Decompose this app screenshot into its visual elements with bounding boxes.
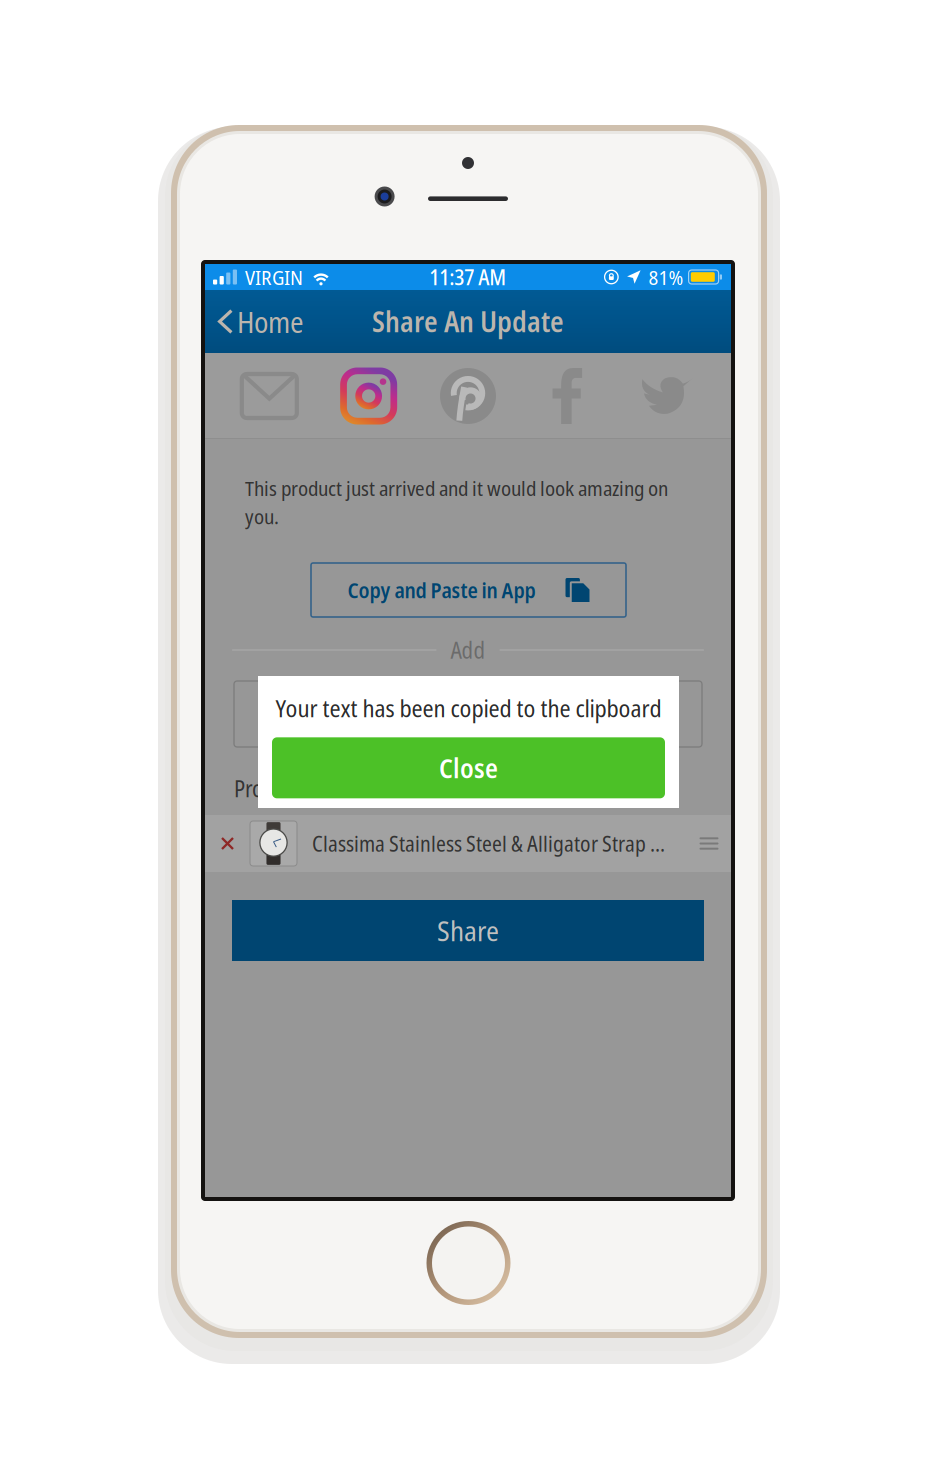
staticText: Your text has been copied to the clipboa…	[275, 692, 661, 724]
button[interactable]: Copy and Paste in App	[311, 563, 626, 617]
button[interactable]: Share on Pinterest	[433, 353, 503, 439]
staticText: Share	[437, 911, 499, 949]
staticText: Copy and Paste in App	[347, 575, 535, 605]
staticText: Add	[450, 635, 485, 665]
button[interactable]: Remove product	[205, 815, 250, 872]
staticText: Products	[234, 773, 311, 804]
button[interactable]: Close	[272, 737, 665, 798]
button[interactable]: Share	[232, 900, 704, 961]
button[interactable]: Share on Facebook	[532, 353, 602, 439]
button[interactable]: Share on Instagram	[334, 353, 404, 439]
button[interactable]: Home	[205, 290, 316, 353]
staticText: VIRGIN	[245, 263, 303, 291]
staticText: 81%	[649, 263, 684, 291]
staticText: Classima Stainless Steel & Alligator Str…	[312, 829, 665, 858]
staticText: 11:37 AM	[429, 262, 506, 292]
button[interactable]: Share on Twitter	[632, 353, 702, 439]
button[interactable]: Share by email	[234, 353, 304, 439]
staticText: This product just arrived and it would l…	[245, 474, 668, 530]
staticText: Share An Update	[372, 302, 564, 340]
staticText: Home	[237, 301, 304, 341]
button[interactable]: Reorder product	[687, 815, 731, 872]
staticText: Close	[439, 750, 498, 786]
